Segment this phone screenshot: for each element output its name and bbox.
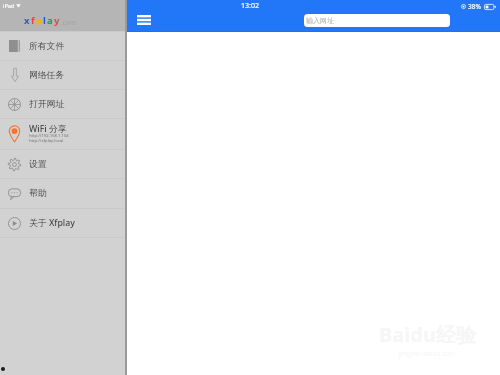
staticText: 关于 Xfplay <box>29 217 75 229</box>
staticText: 帮助 <box>29 188 47 199</box>
staticText: x <box>24 14 31 27</box>
staticText: 所有文件 <box>29 41 65 52</box>
staticText: Baidu经验 <box>379 321 476 348</box>
staticText: l <box>43 14 47 27</box>
staticText: 设置 <box>29 159 47 170</box>
staticText: f <box>31 14 36 27</box>
button[interactable]: Menu <box>135 13 152 27</box>
staticText: .com <box>61 18 76 27</box>
staticText: http://192.168.1.104 <box>29 133 69 139</box>
button[interactable]: 帮助 <box>0 179 125 208</box>
staticText: WiFi 分享 <box>29 123 67 135</box>
staticText: 38% <box>468 2 481 11</box>
staticText: 输入网址 <box>306 16 334 25</box>
button[interactable]: 输入网址 <box>304 14 450 27</box>
button[interactable]: 所有文件 <box>0 32 125 60</box>
staticText: iPad <box>3 2 15 9</box>
button[interactable]: 设置 <box>0 150 125 178</box>
staticText: 13:02 <box>241 1 259 11</box>
staticText: 网络任务 <box>29 70 65 81</box>
staticText: 打开网址 <box>29 99 65 110</box>
button[interactable]: 关于 Xfplay <box>0 209 125 237</box>
staticText: a <box>47 14 54 27</box>
button[interactable]: 打开网址 <box>0 90 125 118</box>
staticText: p <box>36 14 43 27</box>
staticText: y <box>54 14 61 27</box>
button[interactable]: WiFi 分享 <box>0 119 125 149</box>
staticText: http://xfplay.local <box>29 138 64 144</box>
button[interactable]: 网络任务 <box>0 61 125 89</box>
